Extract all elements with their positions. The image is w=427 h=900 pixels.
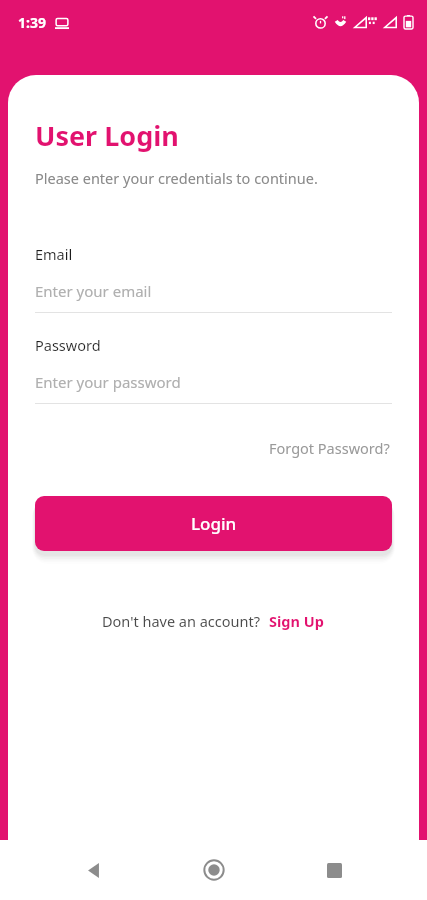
- staticText: Forgot Password?: [269, 438, 390, 458]
- staticText: User Login: [35, 117, 179, 154]
- button[interactable]: Recent apps: [306, 842, 362, 898]
- staticText: Login: [191, 512, 237, 535]
- button[interactable]: Forgot Password?: [267, 434, 392, 462]
- staticText: Sign Up: [269, 611, 324, 631]
- button[interactable]: Email: [35, 244, 392, 313]
- button[interactable]: Password: [35, 335, 392, 404]
- staticText: 1:39: [18, 13, 46, 32]
- staticText: Don't have an account?: [102, 611, 260, 631]
- staticText: Password: [35, 335, 101, 355]
- staticText: Enter your email: [35, 281, 152, 301]
- staticText: Email: [35, 244, 73, 264]
- button[interactable]: Sign Up: [267, 608, 326, 634]
- button[interactable]: Home: [186, 842, 242, 898]
- button[interactable]: Login: [35, 496, 392, 551]
- staticText: Please enter your credentials to continu…: [35, 168, 318, 188]
- button[interactable]: Back: [65, 842, 121, 898]
- staticText: Enter your password: [35, 372, 181, 392]
